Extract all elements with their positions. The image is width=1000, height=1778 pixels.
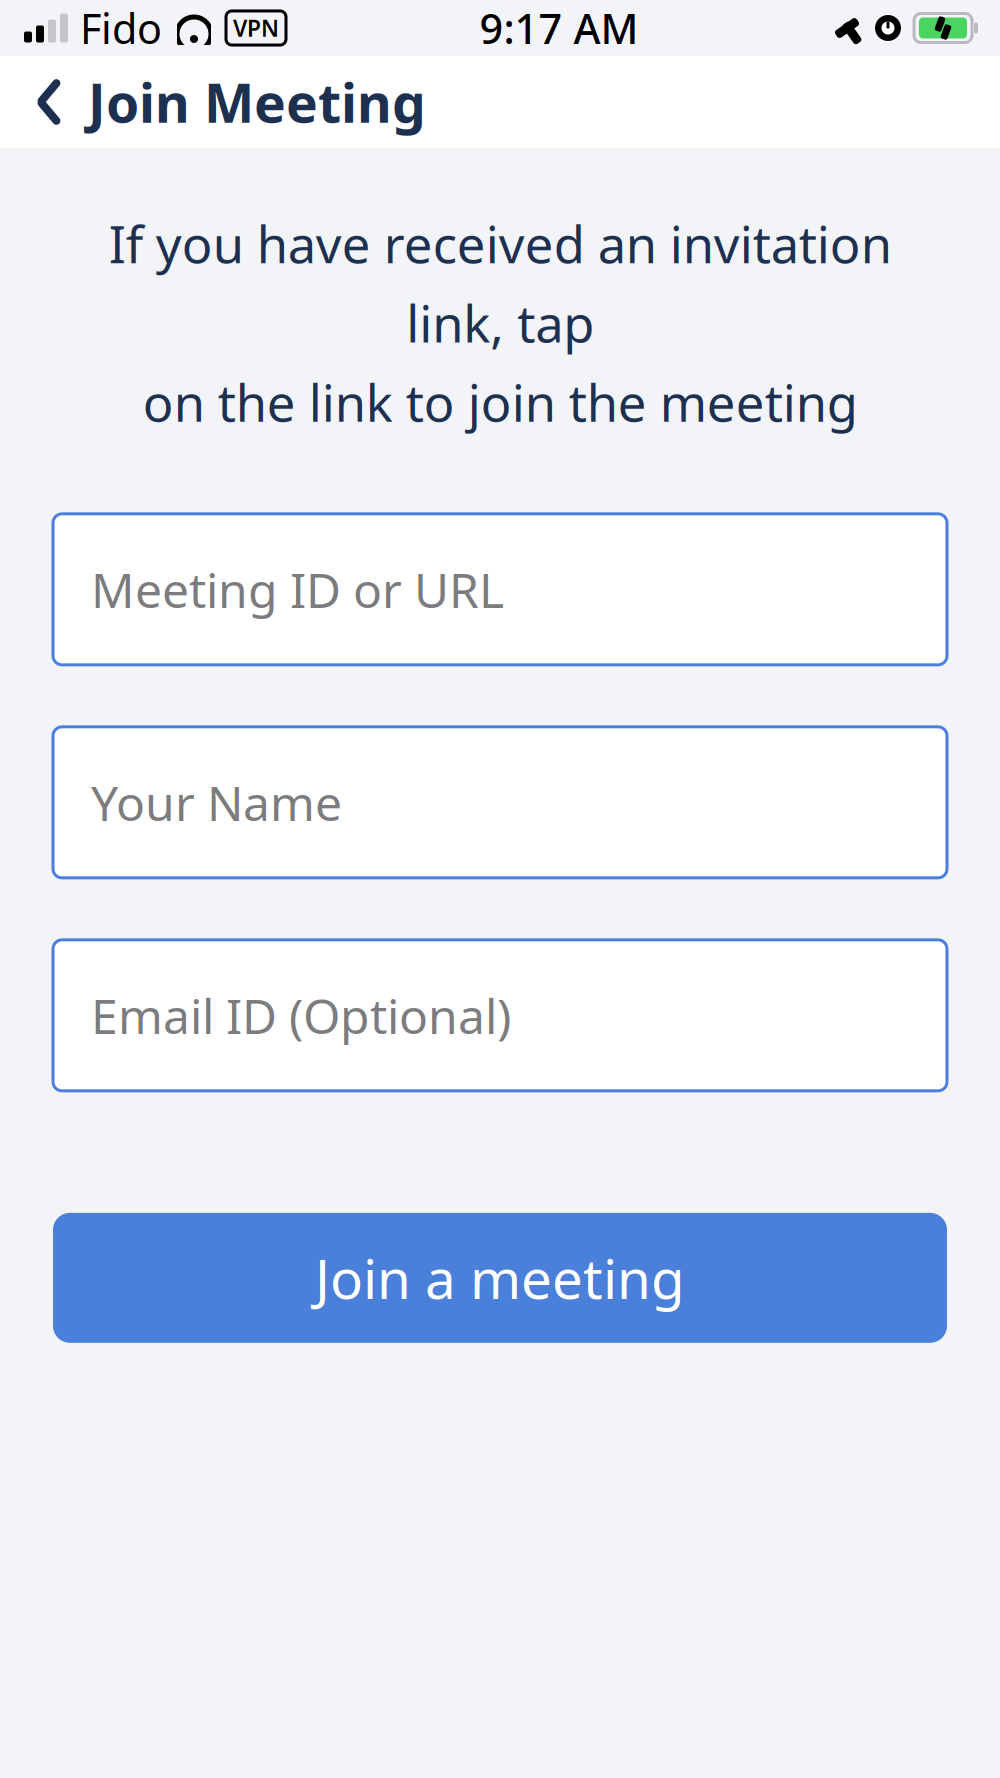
button[interactable]: Meeting ID or URL — [53, 514, 947, 665]
staticText: Email ID (Optional) — [91, 983, 511, 1047]
staticText: If you have received an invitation link,… — [108, 210, 891, 436]
staticText: Meeting ID or URL — [91, 557, 504, 621]
staticText: VPN — [233, 13, 279, 43]
staticText: 9:17 AM — [479, 1, 638, 55]
staticText: Fido — [80, 1, 162, 55]
button[interactable]: Back — [10, 56, 88, 148]
button[interactable]: Email ID (Optional) — [53, 940, 947, 1091]
button[interactable]: Your Name — [53, 727, 947, 878]
button[interactable]: Join a meeting — [53, 1213, 947, 1343]
staticText: Your Name — [91, 770, 342, 834]
staticText: Join a meeting — [315, 1242, 685, 1314]
staticText: Join Meeting — [88, 67, 426, 137]
